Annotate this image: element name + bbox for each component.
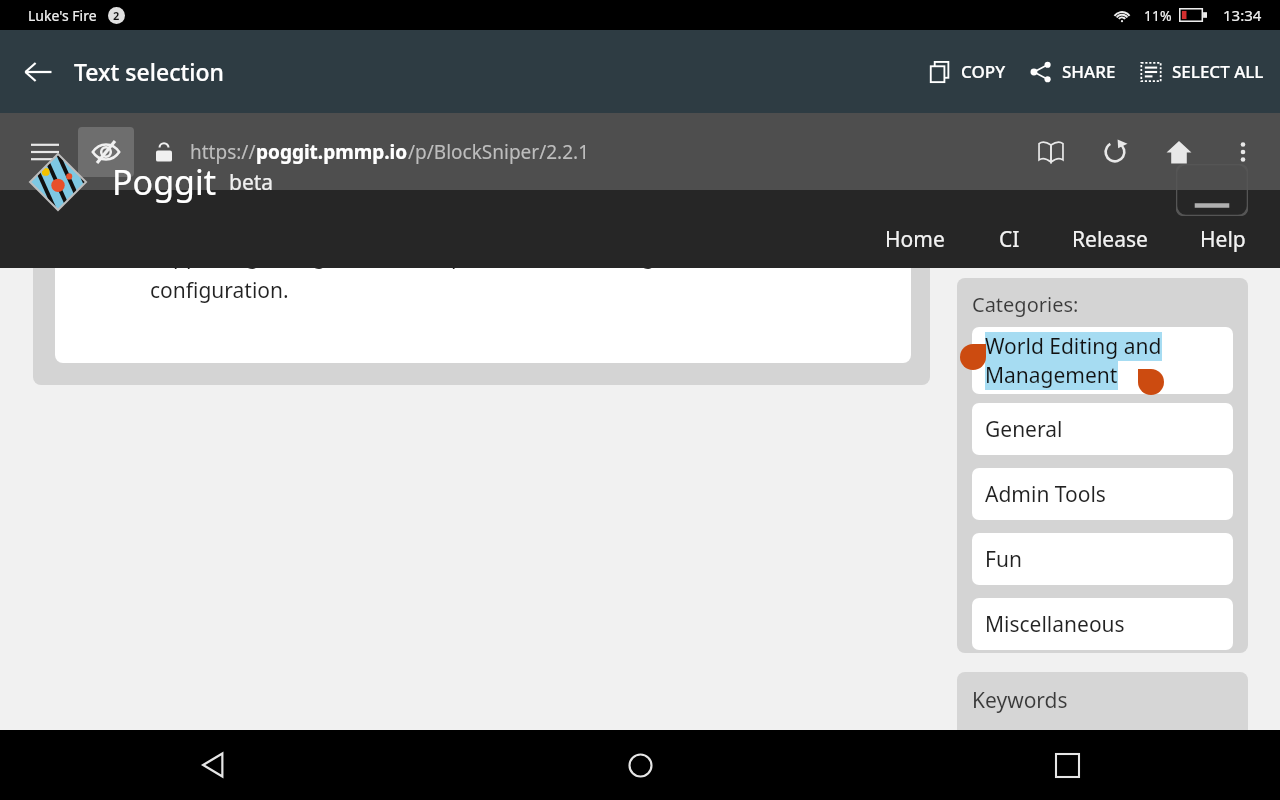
button[interactable]: General bbox=[972, 403, 1233, 455]
staticText: supporting configuration, compared to th… bbox=[150, 268, 655, 304]
button[interactable]: Site menu bbox=[1176, 164, 1248, 216]
staticText: Luke's Fire bbox=[28, 6, 97, 25]
button[interactable]: Release bbox=[1068, 217, 1152, 262]
button[interactable]: Home bbox=[1156, 129, 1202, 175]
staticText: /p/BlockSniper/2.2.1 bbox=[408, 139, 590, 165]
button[interactable]: Back bbox=[12, 46, 64, 98]
staticText: Text selection bbox=[74, 56, 224, 87]
button[interactable]: Admin Tools bbox=[972, 468, 1233, 520]
staticText: Fun bbox=[985, 545, 1022, 574]
button[interactable]: More options bbox=[1220, 129, 1266, 175]
staticText: Management bbox=[985, 361, 1118, 390]
staticText: Admin Tools bbox=[985, 480, 1106, 509]
button[interactable]: COPY bbox=[929, 50, 1006, 93]
staticText: poggit.pmmp.io bbox=[256, 139, 408, 165]
button[interactable]: SELECT ALL bbox=[1140, 50, 1264, 93]
staticText: COPY bbox=[961, 60, 1006, 83]
button[interactable]: Help bbox=[1196, 217, 1250, 262]
button[interactable]: Menu bbox=[18, 125, 72, 179]
staticText: SHARE bbox=[1062, 60, 1116, 83]
button[interactable]: Home bbox=[881, 217, 949, 262]
staticText: Keywords bbox=[972, 686, 1068, 715]
staticText: SELECT ALL bbox=[1172, 60, 1264, 83]
button[interactable]: Reload bbox=[1092, 129, 1138, 175]
staticText: 13:34 bbox=[1223, 5, 1262, 25]
staticText: 11% bbox=[1144, 6, 1172, 25]
other: Selection start handle bbox=[960, 344, 986, 370]
button[interactable]: CI bbox=[995, 217, 1024, 262]
button[interactable]: Miscellaneous bbox=[972, 598, 1233, 650]
staticText: World Editing and bbox=[985, 332, 1162, 361]
button[interactable]: Back bbox=[177, 730, 249, 800]
button[interactable]: Private browsing bbox=[78, 127, 134, 177]
staticText: Miscellaneous bbox=[985, 610, 1125, 639]
other: Selection end handle bbox=[1138, 369, 1164, 395]
staticText: 2 bbox=[113, 8, 120, 23]
button[interactable]: SHARE bbox=[1030, 50, 1116, 93]
staticText: Help bbox=[1200, 225, 1246, 254]
staticText: Poggit bbox=[112, 159, 217, 205]
button[interactable]: Home bbox=[604, 730, 676, 800]
other: Secure bbox=[154, 139, 174, 165]
button[interactable]: Bookmarks bbox=[1028, 129, 1074, 175]
staticText: General bbox=[985, 415, 1063, 444]
button[interactable]: World Editing and bbox=[972, 327, 1233, 394]
staticText: https:// bbox=[190, 139, 256, 165]
staticText: CI bbox=[999, 225, 1020, 254]
staticText: Categories: bbox=[972, 291, 1079, 318]
button[interactable]: Recent apps bbox=[1031, 730, 1103, 800]
button[interactable]: Fun bbox=[972, 533, 1233, 585]
staticText: beta bbox=[229, 168, 274, 197]
staticText: Release bbox=[1072, 225, 1148, 254]
staticText: Home bbox=[885, 225, 945, 254]
